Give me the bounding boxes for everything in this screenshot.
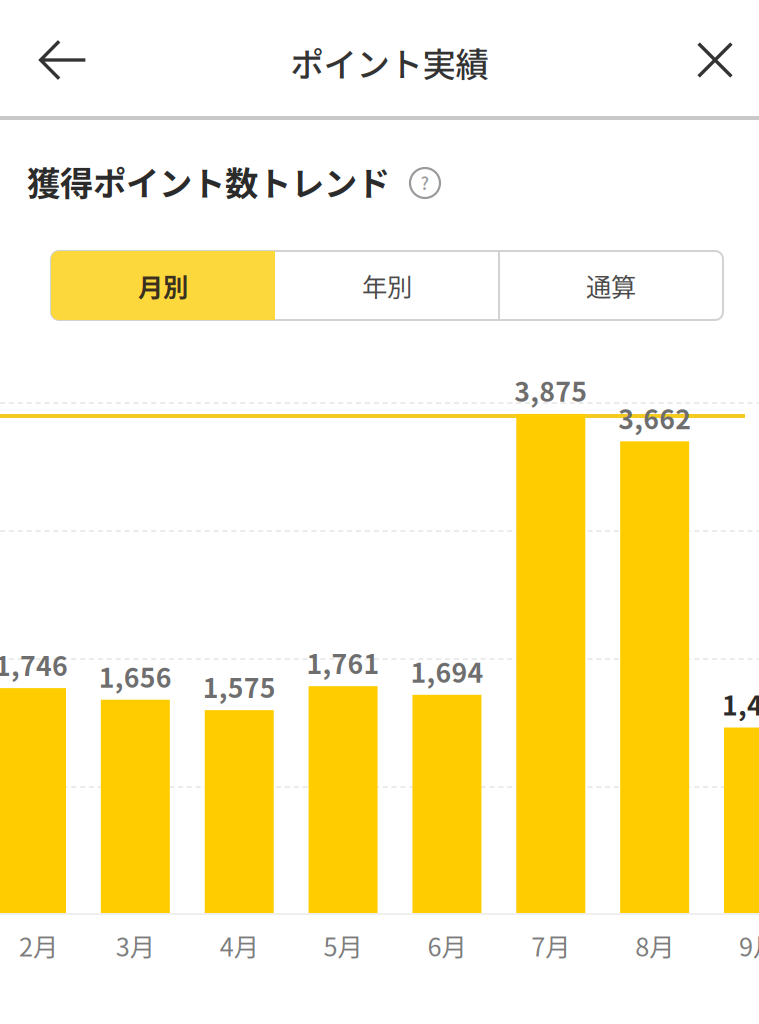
button[interactable]: 月別 bbox=[51, 251, 275, 320]
button[interactable]: ヘルプ bbox=[397, 155, 453, 211]
staticText: 1,440 bbox=[722, 684, 759, 723]
button[interactable]: 通算 bbox=[499, 251, 723, 320]
staticText: 5月 bbox=[324, 927, 363, 964]
staticText: 3,662 bbox=[618, 398, 691, 437]
staticText: 4月 bbox=[220, 927, 259, 964]
staticText: ? bbox=[420, 170, 429, 195]
staticText: 1,694 bbox=[410, 652, 483, 690]
staticText: 9月 bbox=[739, 927, 759, 964]
staticText: ポイント実績 bbox=[290, 38, 488, 86]
staticText: 通算 bbox=[586, 267, 636, 304]
staticText: 3月 bbox=[116, 927, 155, 964]
staticText: 2月 bbox=[19, 927, 58, 964]
staticText: 獲得ポイント数トレンド bbox=[27, 157, 390, 205]
staticText: 年別 bbox=[362, 267, 412, 304]
button[interactable]: 年別 bbox=[275, 251, 499, 320]
staticText: 8月 bbox=[635, 927, 674, 964]
staticText: 月別 bbox=[138, 267, 188, 304]
button[interactable]: 閉じる bbox=[670, 15, 759, 105]
staticText: 1,656 bbox=[99, 657, 172, 695]
staticText: 6月 bbox=[427, 927, 466, 964]
staticText: 1,761 bbox=[307, 643, 380, 682]
button[interactable]: 戻る bbox=[18, 15, 108, 105]
staticText: 3,875 bbox=[514, 371, 587, 409]
staticText: 1,575 bbox=[203, 667, 276, 706]
staticText: 7月 bbox=[531, 927, 570, 964]
staticText: 1,746 bbox=[0, 645, 68, 684]
